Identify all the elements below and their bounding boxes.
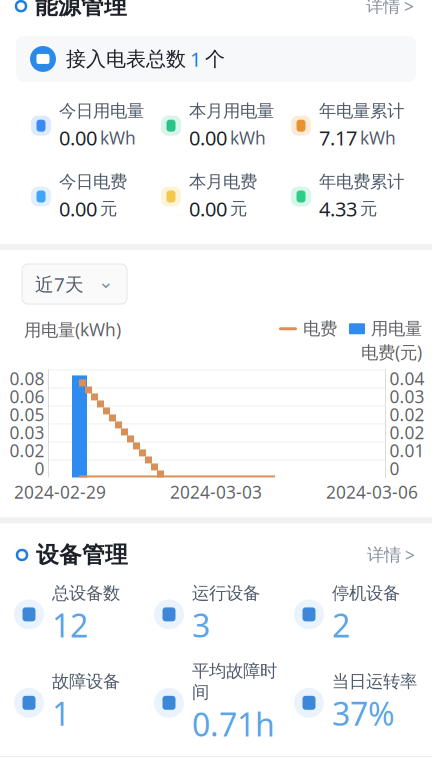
staticText: 详情 [366, 0, 400, 17]
staticText: 0.02 [389, 421, 424, 444]
staticText: 2024-03-03 [170, 480, 262, 503]
staticText: 0.08 [9, 367, 44, 390]
staticText: 电费 [303, 318, 337, 339]
staticText: ⌄ [98, 271, 114, 292]
staticText: 0.05 [9, 403, 44, 426]
staticText: 4.33 [319, 195, 357, 222]
staticText: 3 [192, 604, 210, 646]
staticText: kWh [230, 126, 266, 149]
staticText: 12 [52, 604, 88, 646]
staticText: 总设备数 [52, 582, 120, 604]
staticText: 7.17 [319, 124, 357, 151]
button[interactable]: 详情 [364, 0, 416, 22]
staticText: 0.03 [9, 421, 44, 444]
staticText: 2024-02-29 [14, 480, 106, 503]
staticText: 用电量 [371, 318, 422, 339]
staticText: 1 [190, 46, 201, 72]
staticText: 元 [230, 198, 247, 219]
staticText: kWh [100, 126, 136, 149]
staticText: 0.03 [389, 385, 424, 408]
staticText: 1 [52, 692, 70, 735]
staticText: 0.06 [9, 385, 44, 408]
staticText: 0.00 [59, 124, 97, 151]
staticText: 2024-03-06 [326, 480, 418, 503]
staticText: 当日运转率 [332, 671, 417, 692]
staticText: 年电费累计 [319, 171, 404, 192]
staticText: 详情 [367, 544, 401, 566]
staticText: 故障设备 [52, 671, 120, 692]
staticText: 0.00 [59, 195, 97, 222]
staticText: 能源管理 [35, 0, 127, 20]
staticText: 0.00 [189, 195, 227, 222]
button[interactable]: 详情 [365, 539, 417, 570]
staticText: 元 [100, 198, 117, 219]
staticText: 0.01 [389, 439, 424, 462]
staticText: 0.02 [389, 403, 424, 426]
staticText: 今日电费 [59, 171, 127, 192]
staticText: 停机设备 [332, 582, 400, 604]
staticText: 0.04 [389, 367, 424, 390]
staticText: 个 [205, 47, 225, 71]
staticText: 电费(元) [361, 340, 422, 363]
staticText: 运行设备 [192, 582, 260, 604]
staticText: 近7天 [35, 272, 84, 296]
staticText: > [405, 543, 415, 566]
staticText: 0 [34, 457, 44, 480]
staticText: 0.71h [192, 703, 275, 745]
staticText: 0.02 [9, 439, 44, 462]
staticText: 本月电费 [189, 171, 257, 192]
button[interactable]: 近7天 [22, 264, 127, 304]
staticText: 平均故障时间 [192, 660, 277, 703]
staticText: 设备管理 [36, 541, 128, 569]
staticText: 0 [389, 457, 399, 480]
staticText: 年电量累计 [319, 100, 404, 121]
staticText: 接入电表总数 [66, 47, 186, 71]
staticText: 本月用电量 [189, 100, 274, 121]
staticText: 2 [332, 604, 350, 646]
staticText: 元 [360, 198, 377, 219]
staticText: 用电量(kWh) [24, 318, 121, 341]
staticText: > [404, 0, 414, 18]
staticText: 今日用电量 [59, 100, 144, 121]
staticText: 0.00 [189, 124, 227, 151]
staticText: 37% [332, 692, 395, 735]
staticText: kWh [360, 126, 396, 149]
